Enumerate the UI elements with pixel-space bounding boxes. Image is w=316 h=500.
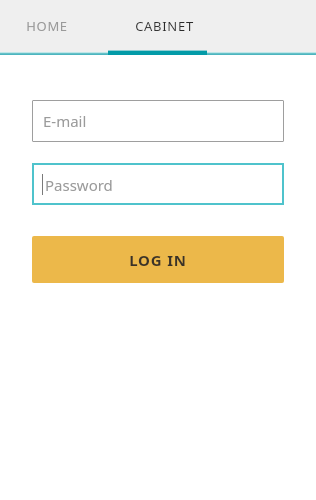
button[interactable]: E-mail [32, 100, 284, 142]
button[interactable]: LOG IN [32, 236, 284, 283]
staticText: E-mail [43, 111, 87, 131]
staticText: CABINET [135, 17, 194, 35]
staticText: HOME [26, 17, 68, 35]
button[interactable]: HOME [0, 0, 108, 51]
staticText: LOG IN [129, 250, 187, 270]
button[interactable]: CABINET [108, 0, 220, 51]
button[interactable]: Password [32, 163, 284, 205]
staticText: Password [45, 175, 113, 195]
